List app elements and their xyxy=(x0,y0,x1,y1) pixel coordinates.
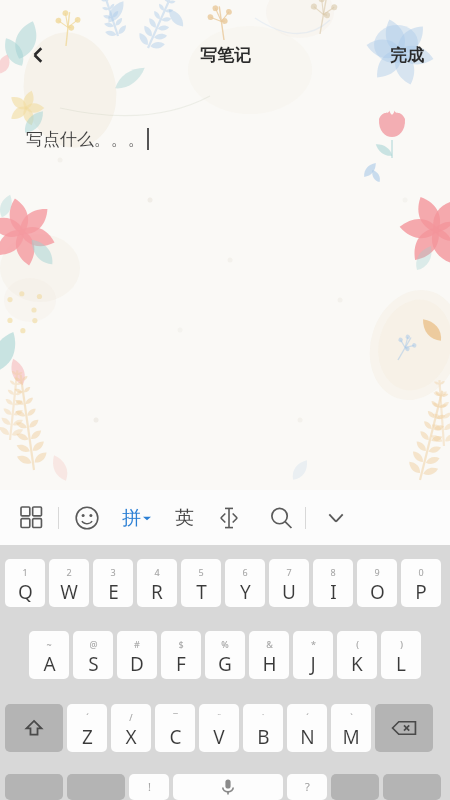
button[interactable]: ~ xyxy=(29,631,69,679)
staticText: 拼 xyxy=(122,506,141,530)
button[interactable]: Voice input xyxy=(173,774,283,800)
staticText: 写点什么。。。 xyxy=(26,129,145,150)
staticText: I xyxy=(330,579,337,605)
button[interactable]: % xyxy=(205,631,245,679)
staticText: K xyxy=(351,651,363,677)
button[interactable]: Shift xyxy=(5,704,63,752)
staticText: N xyxy=(300,724,315,750)
button[interactable]: 1 xyxy=(5,559,45,607)
button[interactable]: ´ xyxy=(67,704,107,752)
staticText: 5 xyxy=(198,566,204,578)
staticText: Z xyxy=(82,724,93,750)
button[interactable]: & xyxy=(249,631,289,679)
button[interactable]: Move cursor xyxy=(207,491,251,545)
staticText: O xyxy=(370,579,385,605)
staticText: J xyxy=(310,651,316,677)
staticText: W xyxy=(60,579,78,605)
button[interactable]: ` xyxy=(331,704,371,752)
button[interactable]: Back xyxy=(18,33,62,77)
staticText: S xyxy=(88,651,99,677)
button[interactable]: @ xyxy=(73,631,113,679)
staticText: D xyxy=(130,651,144,677)
staticText: ~ xyxy=(46,638,52,650)
staticText: Y xyxy=(240,579,251,605)
staticText: G xyxy=(218,651,232,677)
staticText: U xyxy=(282,579,296,605)
staticText: M xyxy=(342,724,360,750)
staticText: R xyxy=(151,579,163,605)
button[interactable]: ¯ xyxy=(155,704,195,752)
button[interactable]: 英 xyxy=(161,491,207,545)
button[interactable]: 5 xyxy=(181,559,221,607)
staticText: 8 xyxy=(330,566,336,578)
button[interactable]: ) xyxy=(381,631,421,679)
staticText: A xyxy=(43,651,56,677)
button[interactable]: 6 xyxy=(225,559,265,607)
staticText: 写笔记 xyxy=(200,45,251,66)
staticText: ` xyxy=(350,711,353,723)
button[interactable]: Keyboard layouts xyxy=(10,491,54,545)
staticText: 2 xyxy=(66,566,72,578)
staticText: B xyxy=(257,724,270,750)
staticText: $ xyxy=(178,638,184,650)
staticText: # xyxy=(134,638,140,650)
staticText: 1 xyxy=(22,566,28,578)
staticText: E xyxy=(108,579,119,605)
button[interactable]: 7 xyxy=(269,559,309,607)
staticText: C xyxy=(169,724,182,750)
staticText: F xyxy=(176,651,186,677)
staticText: L xyxy=(396,651,406,677)
staticText: P xyxy=(415,579,427,605)
button[interactable]: 8 xyxy=(313,559,353,607)
staticText: & xyxy=(266,638,273,650)
staticText: Q xyxy=(18,579,33,605)
staticText: 0 xyxy=(418,566,424,578)
staticText: ¨ xyxy=(216,711,222,723)
staticText: 3 xyxy=(110,566,116,578)
button[interactable]: # xyxy=(117,631,157,679)
button[interactable]: Search xyxy=(259,491,303,545)
button[interactable]: 3 xyxy=(93,559,133,607)
staticText: 9 xyxy=(374,566,380,578)
staticText: T xyxy=(196,579,207,605)
button[interactable]: / xyxy=(111,704,151,752)
button[interactable]: 4 xyxy=(137,559,177,607)
staticText: ´ xyxy=(86,711,89,723)
button[interactable]: Period xyxy=(331,774,379,800)
staticText: 6 xyxy=(242,566,248,578)
button[interactable]: 拼 xyxy=(111,491,161,545)
button[interactable]: Symbols xyxy=(5,774,63,800)
staticText: ˊ xyxy=(306,711,309,723)
button[interactable]: ( xyxy=(337,631,377,679)
staticText: ! xyxy=(148,779,151,794)
staticText: ˙ xyxy=(262,711,264,723)
button[interactable]: ¨ xyxy=(199,704,239,752)
button[interactable]: Backspace xyxy=(375,704,433,752)
staticText: 英 xyxy=(175,506,194,530)
staticText: ¯ xyxy=(173,711,178,723)
staticText: ? xyxy=(305,779,310,794)
staticText: % xyxy=(221,638,229,650)
staticText: X xyxy=(125,724,137,750)
staticText: ( xyxy=(356,638,359,650)
button[interactable]: $ xyxy=(161,631,201,679)
button[interactable]: * xyxy=(293,631,333,679)
button[interactable]: Emoji xyxy=(65,491,109,545)
button[interactable]: ? xyxy=(287,774,327,800)
staticText: ) xyxy=(400,638,403,650)
button[interactable]: Comma xyxy=(67,774,125,800)
staticText: @ xyxy=(89,638,98,650)
button[interactable]: ! xyxy=(129,774,169,800)
button[interactable]: ˊ xyxy=(287,704,327,752)
button[interactable]: Hide keyboard xyxy=(314,491,358,545)
button[interactable]: 9 xyxy=(357,559,397,607)
staticText: V xyxy=(213,724,225,750)
staticText: / xyxy=(129,711,133,723)
button[interactable]: Enter xyxy=(383,774,441,800)
button[interactable]: 2 xyxy=(49,559,89,607)
button[interactable]: 完成 xyxy=(376,33,438,77)
staticText: 4 xyxy=(154,566,160,578)
staticText: * xyxy=(311,638,316,650)
button[interactable]: 0 xyxy=(401,559,441,607)
button[interactable]: ˙ xyxy=(243,704,283,752)
